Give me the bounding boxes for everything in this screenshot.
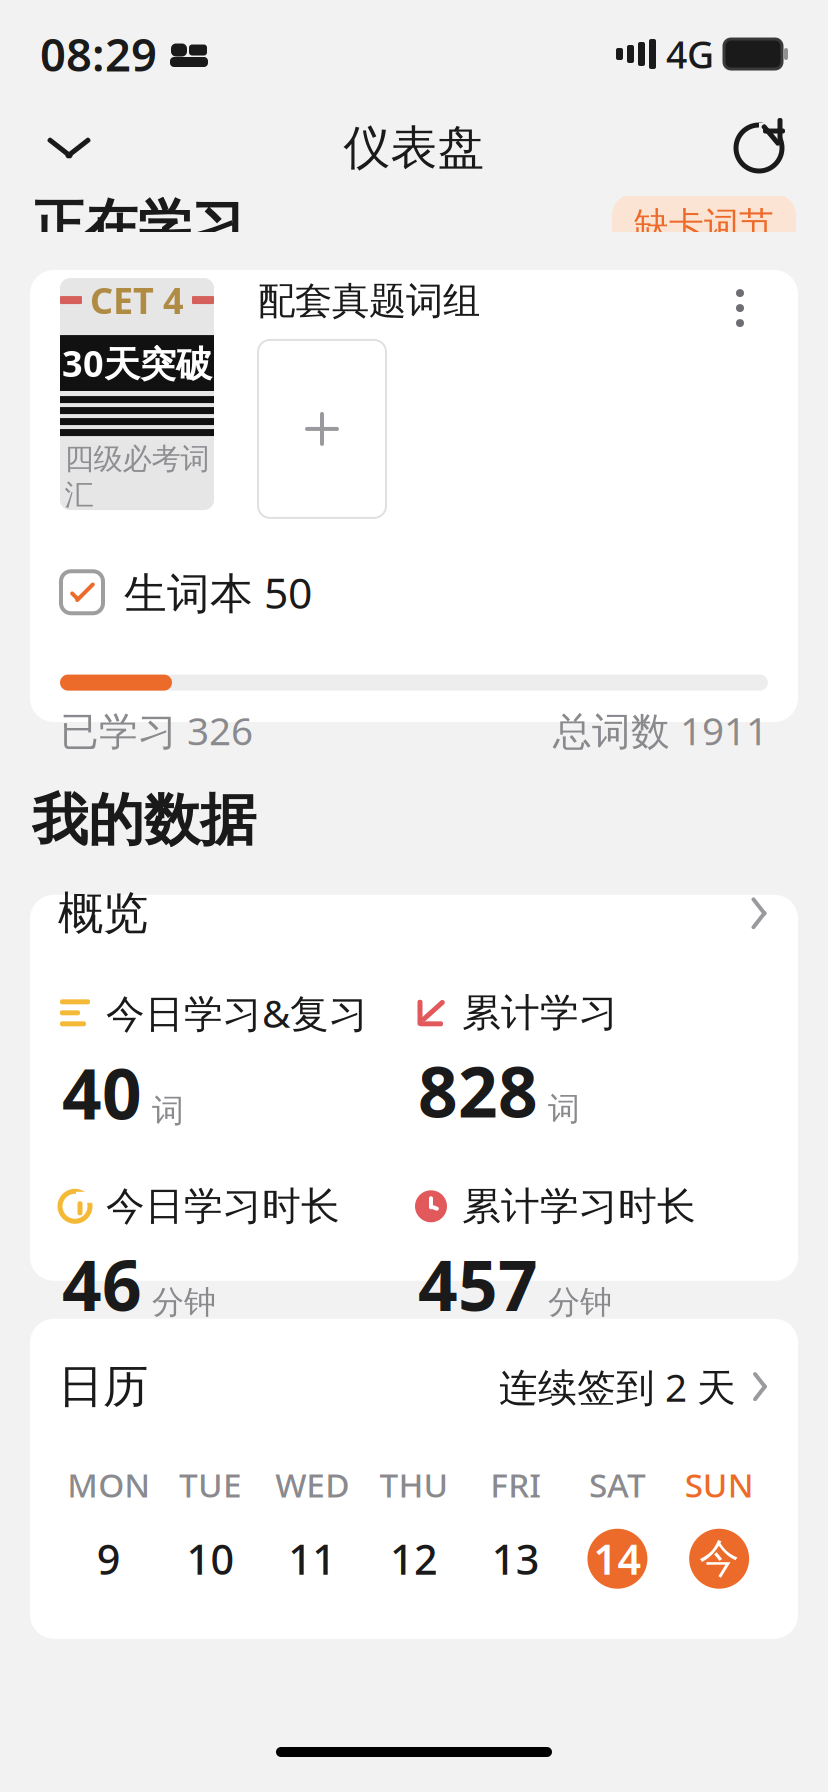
button[interactable]: WED	[261, 1462, 363, 1589]
button[interactable]: 连续签到 2 天	[499, 1361, 770, 1412]
staticText: 配套真题词组	[258, 278, 480, 324]
staticText: 四级必考词汇	[64, 441, 209, 513]
button[interactable]: THU	[363, 1462, 465, 1589]
staticText: 12	[390, 1531, 438, 1586]
button[interactable]: FRI	[465, 1462, 567, 1589]
staticText: 累计学习	[462, 989, 618, 1037]
staticText: 日历	[58, 1359, 148, 1414]
staticText: SUN	[685, 1462, 754, 1507]
staticText: 30天突破	[62, 339, 212, 387]
button[interactable]: 更多	[712, 280, 768, 336]
staticText: CET 4	[90, 276, 184, 324]
staticText: 10	[187, 1531, 235, 1586]
staticText: 缺卡词节	[634, 204, 774, 246]
staticText: 457	[418, 1238, 538, 1330]
staticText: 分钟	[152, 1283, 216, 1322]
staticText: 14	[593, 1531, 641, 1586]
staticText: 4G	[666, 29, 714, 79]
button[interactable]: 分享	[722, 111, 796, 185]
staticText: 13	[492, 1531, 540, 1586]
button[interactable]: 生词本 50	[60, 518, 768, 621]
staticText: WED	[275, 1462, 349, 1507]
button[interactable]: 收起	[32, 111, 106, 185]
button[interactable]: SAT	[567, 1462, 668, 1589]
staticText: 已学习 326	[60, 705, 253, 756]
staticText: 连续签到 2 天	[499, 1361, 736, 1412]
button[interactable]: 概览	[58, 845, 770, 941]
staticText: 概览	[58, 885, 148, 941]
staticText: 分钟	[548, 1283, 612, 1322]
staticText: SAT	[589, 1462, 646, 1507]
staticText: 词	[152, 1091, 184, 1130]
staticText: 仪表盘	[343, 119, 484, 177]
staticText: 40	[62, 1046, 142, 1139]
staticText: 今	[699, 1534, 739, 1583]
button[interactable]: MON	[58, 1462, 160, 1589]
staticText: 9	[97, 1531, 121, 1586]
button[interactable]: TUE	[160, 1462, 261, 1589]
button[interactable]: 添加词书	[258, 340, 386, 518]
button[interactable]: SUN	[668, 1462, 770, 1589]
staticText: 828	[418, 1045, 538, 1137]
staticText: 今日学习时长	[106, 1183, 340, 1230]
staticText: 我的数据	[32, 786, 256, 855]
staticText: 46	[62, 1238, 142, 1330]
staticText: 08:29	[40, 24, 157, 84]
staticText: 正在学习	[32, 192, 244, 258]
staticText: 词	[548, 1089, 580, 1129]
staticText: 生词本 50	[124, 564, 312, 621]
staticText: 总词数 1911	[553, 705, 768, 756]
staticText: 11	[288, 1531, 336, 1586]
staticText: THU	[379, 1462, 448, 1507]
staticText: MON	[67, 1462, 150, 1507]
staticText: FRI	[490, 1462, 541, 1507]
staticText: 今日学习&复习	[106, 987, 368, 1038]
staticText: TUE	[179, 1462, 242, 1507]
staticText: 累计学习时长	[462, 1183, 696, 1230]
